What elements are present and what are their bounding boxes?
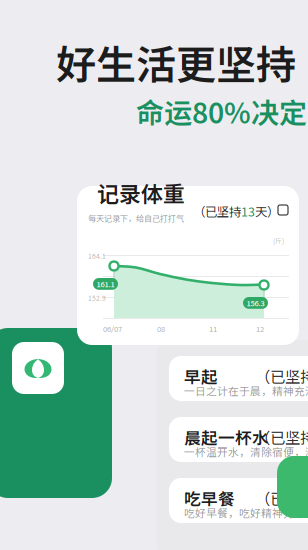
staticText: 一杯温开水，清除宿便，激活全身细: [184, 444, 308, 459]
staticText: (斤): [273, 236, 284, 246]
staticText: （已坚持: [255, 365, 308, 387]
staticText: 156.3: [246, 297, 264, 308]
staticText: （已坚持: [255, 487, 308, 509]
staticText: 12: [256, 323, 264, 334]
staticText: 好生活更坚持: [56, 33, 296, 91]
button[interactable]: 早起: [169, 356, 308, 401]
staticText: （已坚持: [255, 426, 308, 448]
staticText: 11: [209, 323, 217, 334]
button[interactable]: 晨起一杯水: [169, 417, 308, 462]
staticText: 早起: [184, 364, 218, 388]
staticText: 命运80%决定于: [136, 91, 308, 131]
staticText: 08: [157, 323, 165, 334]
staticText: 吃早餐: [184, 486, 235, 510]
staticText: 152.9: [88, 293, 106, 303]
staticText: 06/07: [103, 323, 122, 334]
staticText: 164.1: [88, 251, 106, 261]
staticText: 13: [241, 202, 255, 220]
staticText: 一日之计在于晨，精神充沛，向新的: [184, 383, 308, 398]
staticText: 记录体重: [97, 177, 185, 209]
staticText: 晨起一杯水: [184, 425, 269, 449]
staticText: （已坚持: [193, 202, 241, 220]
staticText: 每天记录下，给自己打打气: [88, 212, 184, 224]
staticText: 161.1: [96, 278, 114, 289]
staticText: 吃好早餐，吃好精神充沛: [184, 505, 305, 520]
staticText: 天）: [255, 202, 279, 220]
button[interactable]: 吃早餐: [169, 478, 308, 523]
